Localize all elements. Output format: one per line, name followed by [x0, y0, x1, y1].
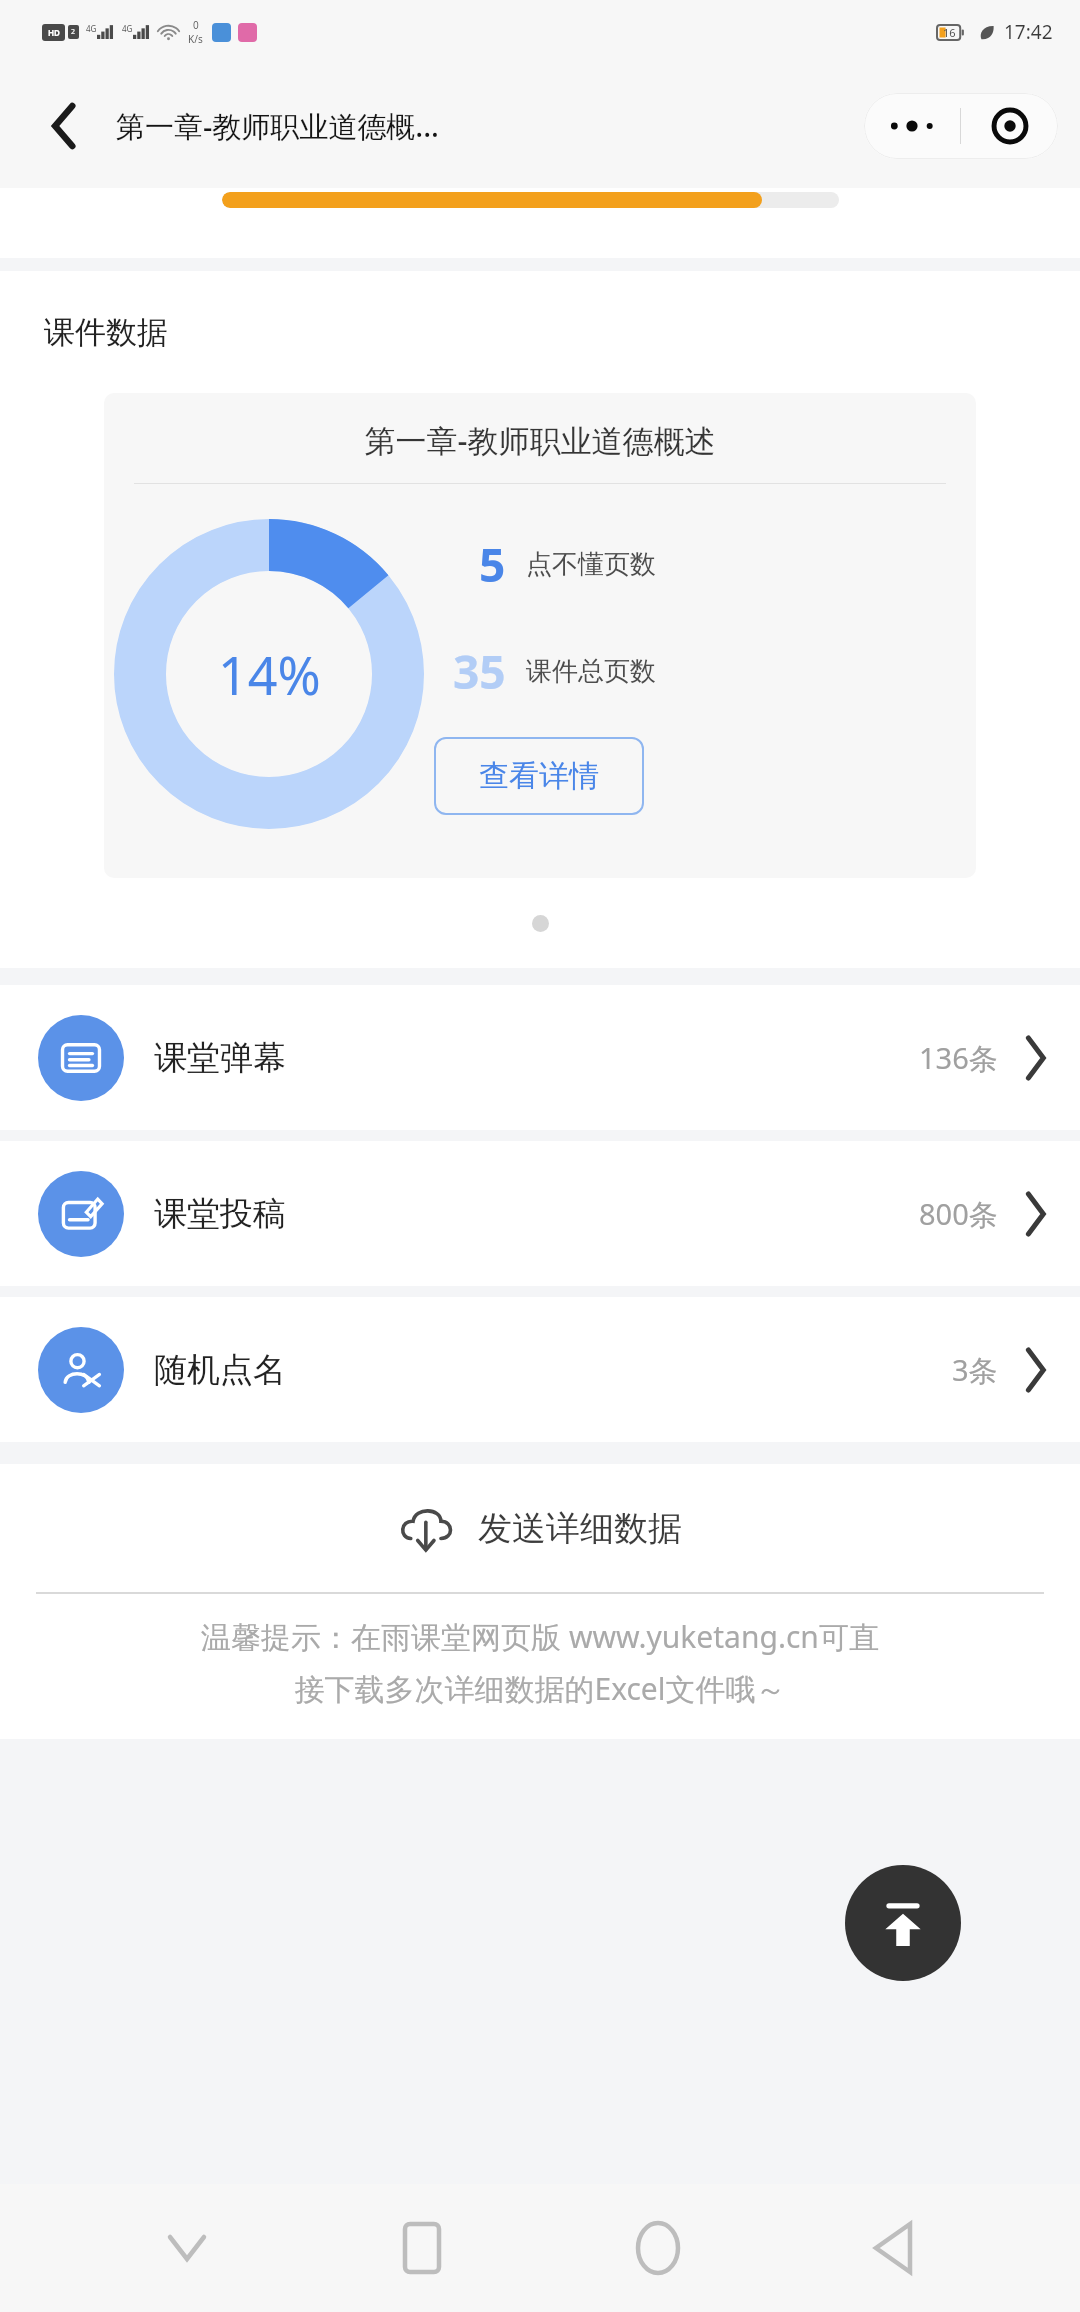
staticText: 3条 — [952, 1350, 998, 1390]
staticText: 课件数据 — [44, 313, 168, 352]
staticText: 查看详情 — [479, 757, 599, 795]
staticText: 4G — [86, 23, 97, 34]
button[interactable]: 发送详细数据 — [0, 1464, 1080, 1592]
button[interactable]: 随机点名 — [0, 1297, 1080, 1442]
button[interactable]: Recents — [374, 2200, 470, 2296]
staticText: 随机点名 — [154, 1349, 286, 1391]
staticText: 点不懂页数 — [526, 548, 656, 581]
button[interactable]: More — [864, 93, 960, 159]
staticText: 第一章-教师职业道德概... — [116, 106, 439, 146]
button[interactable]: Home — [610, 2200, 706, 2296]
staticText: 16 — [943, 25, 956, 40]
button[interactable]: Close — [961, 93, 1058, 159]
staticText: 5 — [479, 533, 506, 596]
button[interactable]: Hide keyboard — [139, 2200, 235, 2296]
staticText: 2 — [71, 27, 76, 37]
staticText: 4G — [122, 23, 133, 34]
button[interactable]: Back — [38, 99, 92, 153]
staticText: HD — [48, 27, 60, 38]
button[interactable]: 课堂弹幕 — [0, 985, 1080, 1130]
staticText: K/s — [188, 32, 203, 46]
staticText: 第一章-教师职业道德概述 — [104, 419, 976, 461]
staticText: 课堂弹幕 — [154, 1037, 286, 1079]
staticText: 14% — [218, 639, 321, 710]
staticText: 发送详细数据 — [478, 1507, 682, 1550]
staticText: 0 — [193, 18, 199, 32]
button[interactable]: 课堂投稿 — [0, 1141, 1080, 1286]
button[interactable]: Scroll to top — [845, 1865, 961, 1981]
staticText: 136条 — [919, 1038, 998, 1078]
staticText: 35 — [453, 640, 506, 703]
button[interactable]: 查看详情 — [434, 737, 644, 815]
staticText: 课件总页数 — [526, 655, 656, 688]
button[interactable]: Back — [845, 2200, 941, 2296]
staticText: 温馨提示：在雨课堂网页版 www.yuketang.cn可直 接下载多次详细数据… — [30, 1616, 1050, 1709]
staticText: 17:42 — [1004, 19, 1053, 45]
staticText: 800条 — [919, 1194, 998, 1234]
staticText: 课堂投稿 — [154, 1193, 286, 1235]
